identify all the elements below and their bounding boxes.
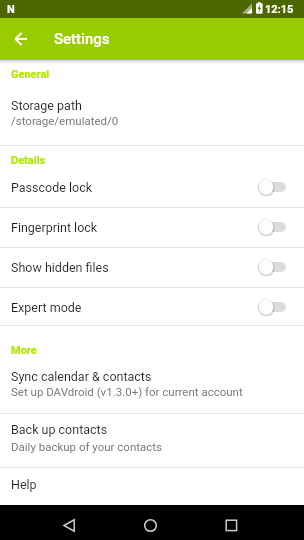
staticText: 12:15 xyxy=(265,3,294,16)
button[interactable] xyxy=(135,510,165,540)
button[interactable]: Show hidden files xyxy=(0,247,304,287)
button[interactable]: Back up contacts xyxy=(0,413,304,467)
button[interactable]: Sync calendar & contacts xyxy=(0,354,304,413)
staticText: More xyxy=(11,344,37,357)
staticText: Expert mode xyxy=(11,300,82,315)
button[interactable] xyxy=(216,510,246,540)
staticText: Show hidden files xyxy=(11,260,109,275)
staticText: General xyxy=(11,68,50,81)
staticText: Set up DAVdroid (v1.3.0+) for current ac… xyxy=(11,385,243,398)
staticText: Storage path xyxy=(11,98,82,113)
staticText: Settings xyxy=(54,30,110,48)
staticText: Fingerprint lock xyxy=(11,220,98,235)
button[interactable]: Fingerprint lock xyxy=(0,207,304,247)
button[interactable]: Storage path xyxy=(0,85,304,145)
staticText: Daily backup of your contacts xyxy=(11,440,162,453)
button[interactable]: Passcode lock xyxy=(0,167,304,207)
staticText: Sync calendar & contacts xyxy=(11,369,152,384)
staticText: Back up contacts xyxy=(11,422,108,437)
button[interactable]: Help xyxy=(0,467,304,505)
staticText: Details xyxy=(11,154,46,167)
staticText: N xyxy=(7,3,15,16)
button[interactable] xyxy=(8,26,34,52)
button[interactable]: Expert mode xyxy=(0,287,304,325)
button[interactable] xyxy=(54,510,84,540)
staticText: Passcode lock xyxy=(11,180,93,195)
staticText: /storage/emulated/0 xyxy=(11,114,119,127)
staticText: Help xyxy=(11,477,37,492)
